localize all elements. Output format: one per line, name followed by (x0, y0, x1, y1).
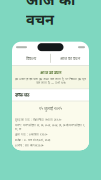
staticText: प्रार्थना : संत वचन ११:२२-२७ (15, 144, 43, 147)
staticText: सन्देश : प्र. भज मंत्र ६:४-१८, ४०-४३ (15, 138, 50, 142)
staticText: आज का वचन (40, 70, 61, 75)
button[interactable]: विकल्प (12, 52, 50, 65)
staticText: आज का वचन (26, 0, 75, 29)
staticText: आज का वचन (60, 56, 80, 61)
button[interactable]: आज का वचन (51, 52, 89, 65)
staticText: सुबह का पाठ : विश्व नियम अध्याय ३१:१-१० (15, 118, 61, 121)
staticText: दैनिक पाठ (15, 92, 29, 98)
staticText: भजन : भजन संहिता ११, १७, २०-२१, २२-२४, ३… (15, 123, 85, 131)
staticText: इस प्रकार हर एक भला वृक्ष अच्छा फल लाता … (15, 77, 86, 84)
staticText: दूसरा पाठ : प्रकाशित १:१२-२० (15, 133, 47, 136)
staticText: १५ जुलाई २०२५ (39, 106, 62, 111)
staticText: विकल्प (26, 56, 36, 61)
